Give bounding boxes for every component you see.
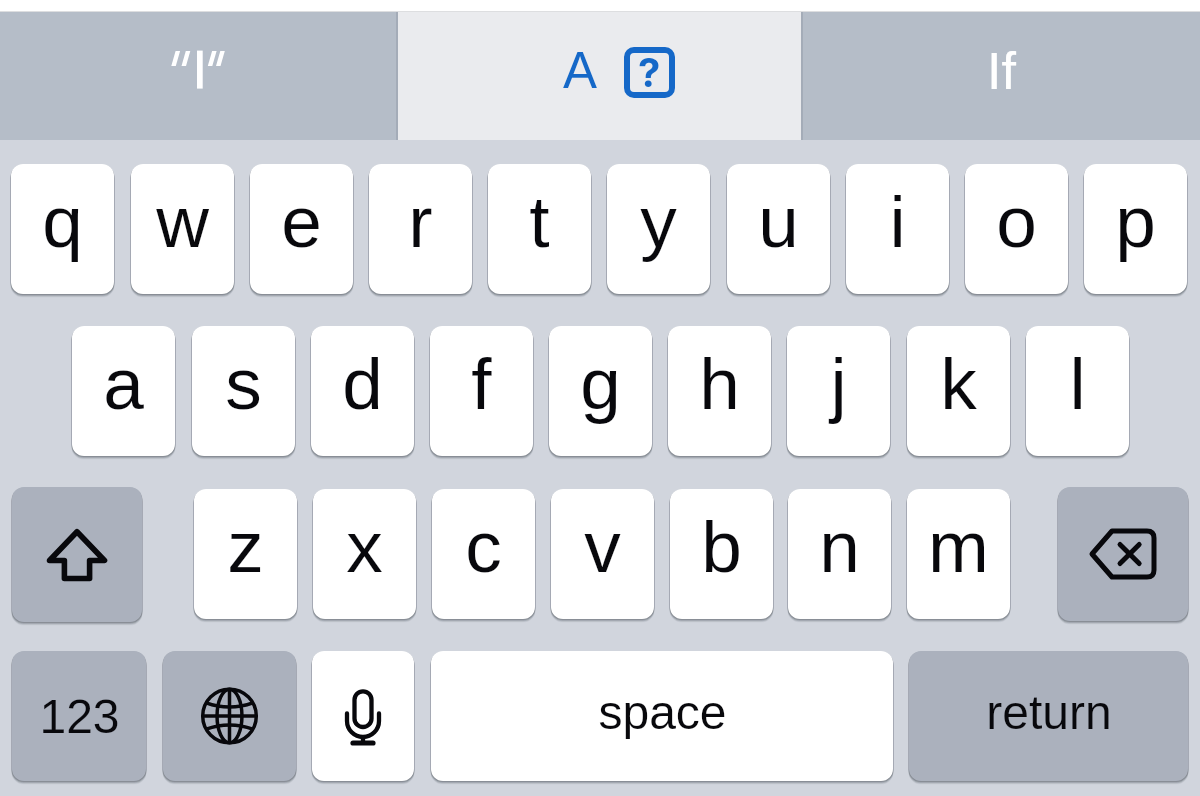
button[interactable]: y [607, 164, 710, 298]
button[interactable]: m [907, 489, 1010, 623]
staticText: c [465, 506, 502, 588]
staticText: s [225, 343, 262, 425]
button[interactable]: i [846, 164, 949, 298]
button[interactable]: w [131, 164, 234, 298]
button[interactable]: j [787, 326, 890, 460]
staticText: ? [638, 48, 661, 96]
button[interactable]: u [727, 164, 830, 298]
button[interactable]: c [432, 489, 535, 623]
staticText: g [580, 343, 621, 425]
button[interactable]: l [1026, 326, 1129, 460]
staticText: t [529, 181, 550, 263]
staticText: v [584, 506, 621, 588]
staticText: m [928, 506, 989, 588]
staticText: o [996, 181, 1037, 263]
staticText: a [103, 343, 144, 425]
button[interactable]: z [194, 489, 297, 623]
staticText: d [342, 343, 383, 425]
button[interactable]: o [965, 164, 1068, 298]
staticText: l [1069, 343, 1086, 425]
staticText: z [227, 506, 264, 588]
button[interactable]: x [313, 489, 416, 623]
button[interactable]: b [670, 489, 773, 623]
button[interactable]: e [250, 164, 353, 298]
button[interactable]: Dictate [312, 651, 414, 785]
button[interactable]: h [668, 326, 771, 460]
staticText: return [986, 686, 1112, 740]
button[interactable]: q [11, 164, 114, 298]
staticText: e [281, 181, 322, 263]
staticText: b [701, 506, 742, 588]
button[interactable]: A [396, 12, 803, 140]
staticText: space [598, 686, 727, 740]
staticText: x [346, 506, 383, 588]
staticText: 123 [39, 690, 120, 744]
staticText: f [471, 343, 492, 425]
staticText: h [699, 343, 740, 425]
button[interactable]: t [488, 164, 591, 298]
button[interactable]: d [311, 326, 414, 460]
staticText: A [563, 42, 598, 99]
staticText: q [42, 181, 83, 263]
staticText: If [987, 42, 1016, 100]
staticText: n [819, 506, 860, 588]
button[interactable]: return [909, 651, 1188, 785]
staticText: j [830, 343, 847, 425]
button[interactable]: n [788, 489, 891, 623]
button[interactable]: Backspace [1058, 487, 1188, 625]
button[interactable]: v [551, 489, 654, 623]
staticText: p [1115, 181, 1156, 263]
staticText: i [889, 181, 906, 263]
button[interactable]: r [369, 164, 472, 298]
staticText: k [940, 343, 977, 425]
button[interactable]: If [803, 12, 1200, 140]
staticText: y [640, 181, 677, 263]
button[interactable]: g [549, 326, 652, 460]
button[interactable]: a [72, 326, 175, 460]
staticText: u [758, 181, 799, 263]
button[interactable]: p [1084, 164, 1187, 298]
staticText: w [156, 181, 209, 263]
button[interactable]: Shift [12, 487, 142, 626]
button[interactable]: s [192, 326, 295, 460]
button[interactable]: 123 [12, 651, 146, 785]
staticText: r [408, 181, 433, 263]
button[interactable]: f [430, 326, 533, 460]
button[interactable]: k [907, 326, 1010, 460]
button[interactable] [0, 12, 396, 140]
button[interactable]: Next keyboard [163, 651, 296, 785]
button[interactable]: space [431, 651, 893, 785]
